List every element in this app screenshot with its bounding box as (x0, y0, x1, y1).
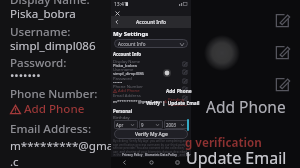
button[interactable]: Phone Number (113, 84, 189, 93)
staticText: Password (113, 76, 132, 82)
staticText: , (143, 153, 145, 157)
button[interactable]: Update Email (186, 147, 287, 168)
staticText: simpl_dimpl086 (113, 71, 144, 77)
staticText: By clicking 'Verify My Age' you will be … (113, 139, 186, 143)
button[interactable]: Edit Password (182, 78, 188, 84)
button[interactable]: Edit Username (182, 69, 188, 75)
staticText: service provider. You also consent to th… (113, 146, 185, 150)
staticText: Piska_bobra (10, 6, 76, 22)
button[interactable]: Edit Display Name (182, 61, 188, 67)
staticText: simpl_dimpl086 (10, 38, 96, 54)
staticText: Password: (10, 55, 67, 71)
staticText: Pending verification (168, 97, 189, 106)
staticText: Add Phone (118, 88, 140, 94)
button[interactable]: Username (113, 67, 189, 76)
staticText: g verification (185, 135, 262, 151)
staticText: Account Info (113, 51, 142, 57)
staticText: Username (113, 67, 134, 73)
button[interactable]: Edit (274, 44, 291, 61)
staticText: 2003 (166, 122, 177, 128)
button[interactable]: Close (114, 10, 121, 17)
staticText: Biometric Data Policy (145, 153, 178, 157)
staticText: m*********@gmail.c (10, 138, 121, 168)
staticText: Piska_bobra (113, 63, 137, 69)
button[interactable]: Edit (274, 12, 291, 29)
button[interactable]: Edit (274, 76, 291, 93)
button[interactable]: 2003 (164, 120, 188, 129)
staticText: Display Name (113, 59, 141, 65)
button[interactable]: Apr (114, 120, 138, 129)
staticText: 9 (141, 122, 144, 128)
staticText: Phone Number: (10, 86, 98, 102)
button[interactable]: Verify | Update Email (146, 100, 200, 107)
staticText: Account Info (111, 19, 191, 26)
button[interactable]: Edit Phone Number (182, 86, 188, 92)
button[interactable]: Edit Email Address (182, 95, 188, 101)
button[interactable]: Display Name (113, 59, 189, 68)
button[interactable]: Account Info (114, 39, 188, 48)
staticText: Display Name: (10, 0, 90, 8)
staticText: Privacy Policy (122, 153, 143, 157)
staticText: Apr (116, 122, 124, 128)
button[interactable]: Add Phone (10, 101, 85, 117)
button[interactable]: Recents (175, 160, 180, 165)
button[interactable]: Verify My Age (114, 129, 188, 139)
staticText: in the (113, 153, 122, 157)
button[interactable]: Back (114, 19, 120, 25)
staticText: My Settings (113, 30, 149, 38)
staticText: Username: (10, 24, 71, 40)
button[interactable]: Add Phone (206, 96, 286, 117)
staticText: age verification process overseen by our… (113, 143, 186, 147)
button[interactable]: 9 (139, 120, 163, 129)
staticText: Email Address: (10, 121, 92, 137)
button[interactable]: Add Phone (166, 88, 192, 95)
staticText: , and (178, 153, 186, 157)
staticText: Personal (113, 108, 133, 114)
staticText: use, and sharing of your biometric data … (113, 150, 188, 154)
button[interactable]: Back (122, 160, 127, 165)
button[interactable]: Email Address (113, 93, 189, 102)
staticText: m*********@gmail.com (113, 99, 163, 105)
staticText: Verify My Age (135, 131, 168, 138)
button[interactable]: Password (113, 76, 189, 85)
staticText: •••••• (113, 80, 123, 86)
button[interactable]: Home (149, 160, 154, 165)
staticText: Birthday (113, 115, 130, 121)
staticText: 13:41 (114, 1, 127, 8)
staticText: Add Phone (24, 101, 85, 117)
staticText: Email Address (113, 93, 141, 99)
staticText: Phone Number (113, 84, 144, 90)
staticText: Terms (186, 153, 193, 161)
staticText: Account Info (118, 41, 146, 47)
staticText: ••••••• (10, 68, 41, 84)
